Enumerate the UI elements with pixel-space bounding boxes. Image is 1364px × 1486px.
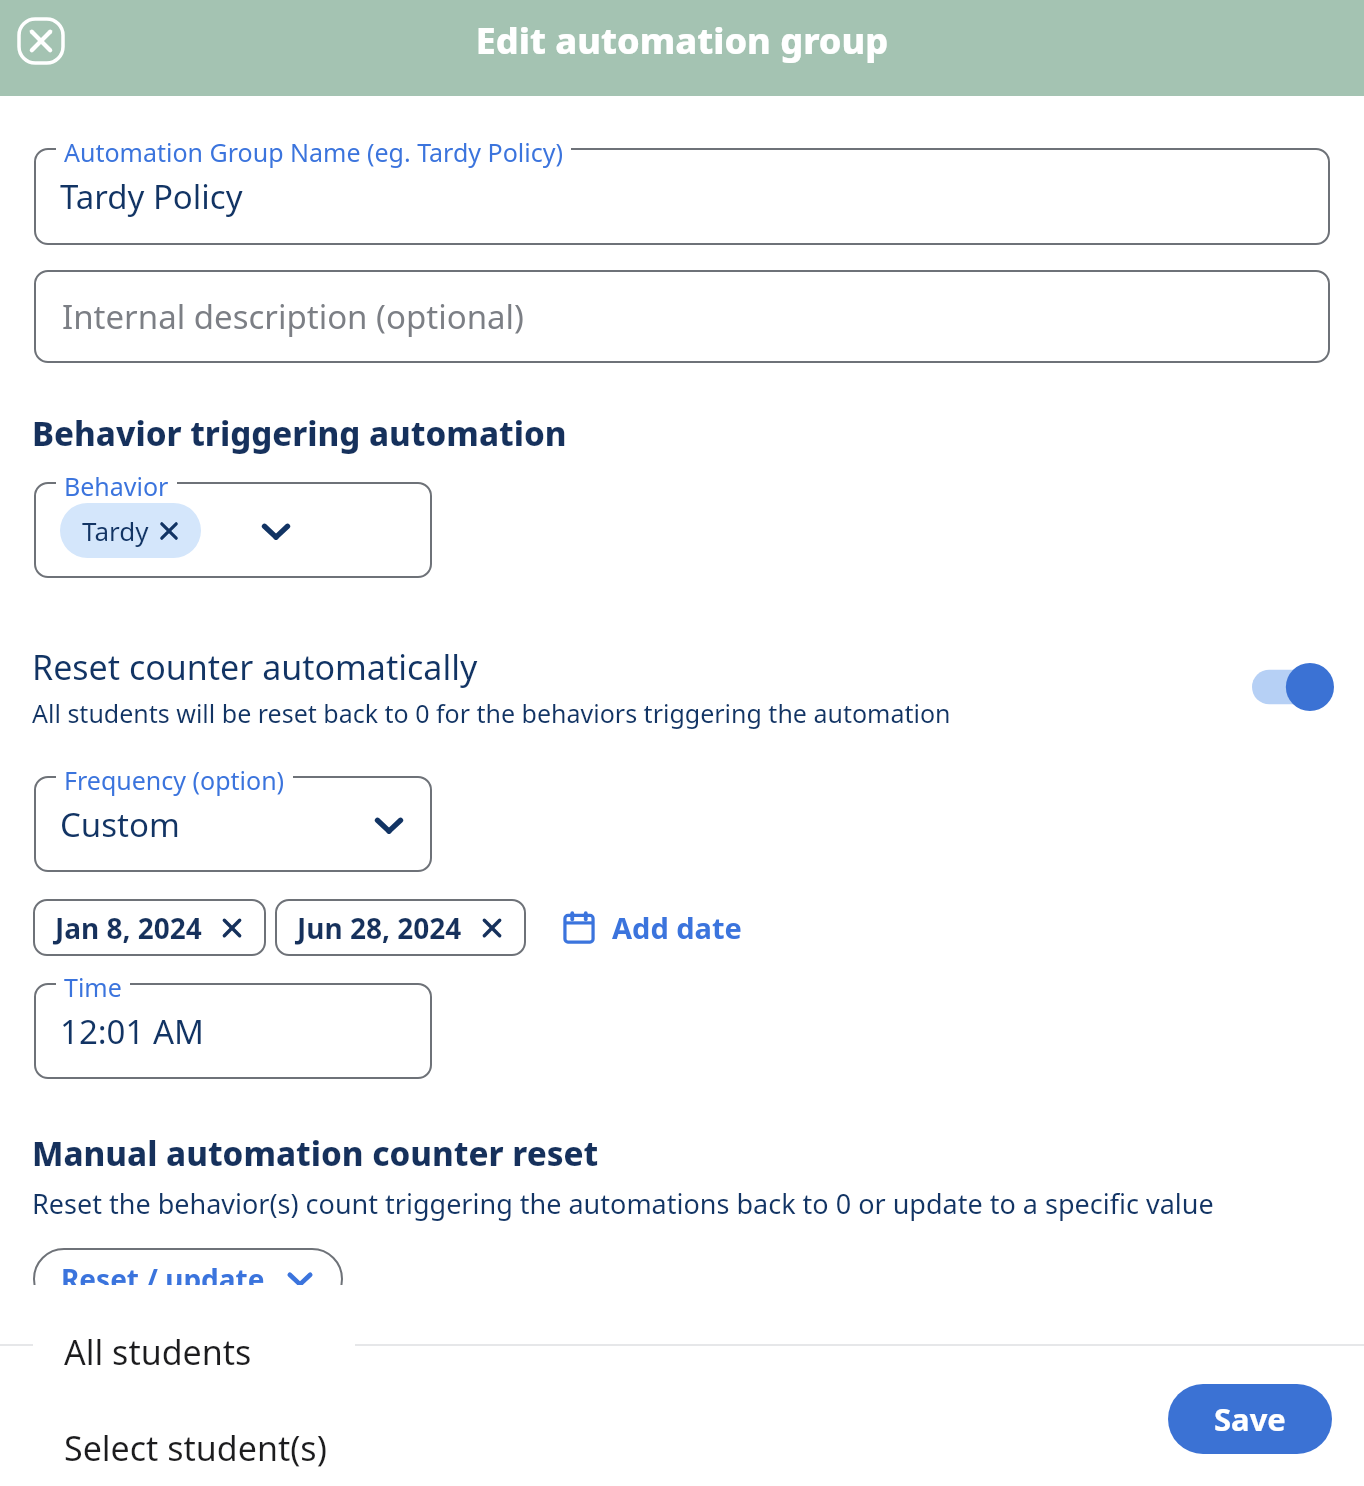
button[interactable]: Tardy (60, 503, 201, 558)
button[interactable]: Jun 28, 2024 (275, 899, 526, 956)
button[interactable]: Tardy Policy (34, 148, 1330, 245)
staticText: Save (1214, 1398, 1286, 1440)
staticText: Time (64, 970, 122, 1004)
button[interactable]: Jan 8, 2024 (33, 899, 266, 956)
staticText: Internal description (optional) (62, 294, 524, 339)
button[interactable]: Custom (34, 776, 432, 872)
staticText: Behavior triggering automation (32, 411, 567, 456)
staticText: Tardy (82, 513, 149, 548)
button[interactable]: Save (1168, 1384, 1332, 1454)
staticText: Manual automation counter reset (32, 1131, 599, 1176)
staticText: Reset counter automatically (32, 644, 478, 690)
staticText: Frequency (option) (64, 763, 285, 797)
staticText: Reset the behavior(s) count triggering t… (32, 1185, 1214, 1222)
button[interactable]: Close (14, 14, 68, 68)
staticText: All students (64, 1329, 252, 1375)
button[interactable]: Internal description (optional) (34, 270, 1330, 363)
staticText: Custom (60, 802, 180, 847)
button[interactable]: Reset / update (33, 1248, 343, 1310)
button[interactable]: Add date (560, 908, 742, 947)
staticText: Jun 28, 2024 (297, 909, 462, 947)
staticText: Add date (612, 908, 742, 947)
button[interactable]: All students (33, 1323, 355, 1381)
staticText: Reset / update (61, 1260, 265, 1298)
staticText: 12:01 AM (60, 1009, 204, 1054)
staticText: Behavior (64, 469, 169, 503)
staticText: Edit automation group (0, 16, 1364, 65)
button[interactable]: 12:01 AM (34, 983, 432, 1079)
staticText: Automation Group Name (eg. Tardy Policy) (64, 135, 563, 169)
staticText: Jan 8, 2024 (55, 909, 202, 947)
button[interactable]: Tardy (34, 482, 432, 578)
button[interactable]: Select student(s) (33, 1419, 355, 1477)
button[interactable]: Reset counter automatically toggle (1252, 659, 1334, 715)
staticText: Select student(s) (64, 1425, 327, 1471)
staticText: All students will be reset back to 0 for… (32, 696, 951, 730)
staticText: Tardy Policy (60, 174, 243, 219)
